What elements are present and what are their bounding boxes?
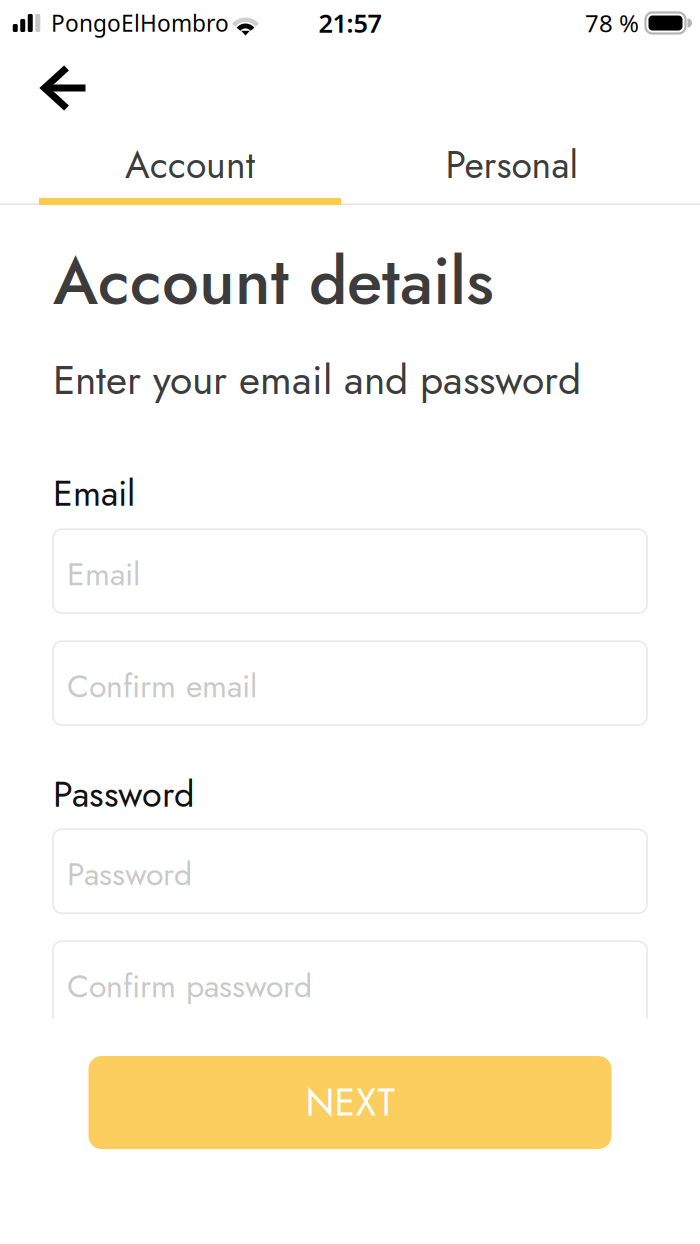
button[interactable]: Personal <box>361 116 663 205</box>
button[interactable]: Email <box>53 529 647 613</box>
button[interactable]: Confirm email <box>53 641 647 725</box>
staticText: Account <box>125 138 255 192</box>
staticText: 21:57 <box>318 6 381 40</box>
staticText: 78 % <box>585 7 639 39</box>
staticText: Email <box>53 467 135 519</box>
staticText: Personal <box>445 138 578 192</box>
button[interactable]: Confirm password <box>53 941 647 1025</box>
staticText: NEXT <box>305 1075 394 1129</box>
staticText: Password <box>53 768 195 820</box>
staticText: Account details <box>53 234 494 328</box>
staticText: Password <box>67 851 192 897</box>
button[interactable]: Back <box>0 45 107 116</box>
staticText: PongoElHombro <box>51 8 229 38</box>
staticText: Confirm email <box>67 663 257 709</box>
staticText: Email <box>67 551 140 597</box>
button[interactable]: Account <box>39 116 341 205</box>
staticText: Confirm password <box>67 963 312 1009</box>
button[interactable]: Password <box>53 829 647 913</box>
staticText: Enter your email and password <box>53 350 581 409</box>
button[interactable]: NEXT <box>88 1056 611 1149</box>
